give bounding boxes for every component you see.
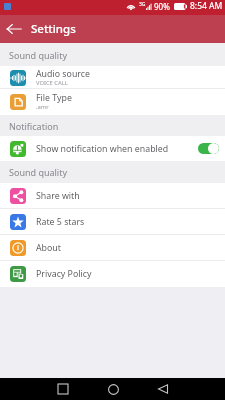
button[interactable]: Show notification when enabled toggle	[198, 143, 219, 154]
button[interactable]: About	[0, 235, 225, 261]
staticText: 90%	[154, 1, 170, 12]
staticText: Audio source	[36, 68, 90, 80]
button[interactable]: Back	[2, 17, 26, 41]
button[interactable]: Privacy Policy	[0, 261, 225, 287]
staticText: Share with	[36, 190, 80, 202]
staticText: 3G	[139, 1, 146, 8]
staticText: Rate 5 stars	[36, 216, 85, 228]
staticText: 8:54 AM	[190, 0, 223, 12]
button[interactable]: Recent apps	[53, 379, 73, 399]
staticText: Sound quality	[9, 166, 68, 178]
staticText: About	[36, 242, 61, 254]
staticText: Settings	[31, 21, 76, 37]
staticText: Privacy Policy	[36, 268, 92, 280]
staticText: File Type	[36, 92, 72, 104]
button[interactable]: Back	[153, 379, 173, 399]
button[interactable]: Home	[103, 379, 123, 399]
staticText: Notification	[9, 120, 59, 132]
staticText: VOICE CALL	[36, 79, 68, 87]
button[interactable]: Audio source	[0, 66, 225, 89]
staticText: Sound quality	[9, 49, 68, 61]
button[interactable]: Show notification when enabled	[0, 136, 225, 161]
staticText: .amr	[36, 103, 49, 111]
button[interactable]: Rate 5 stars	[0, 209, 225, 235]
staticText: Show notification when enabled	[36, 143, 169, 155]
button[interactable]: Share with	[0, 183, 225, 209]
button[interactable]: File Type	[0, 89, 225, 115]
